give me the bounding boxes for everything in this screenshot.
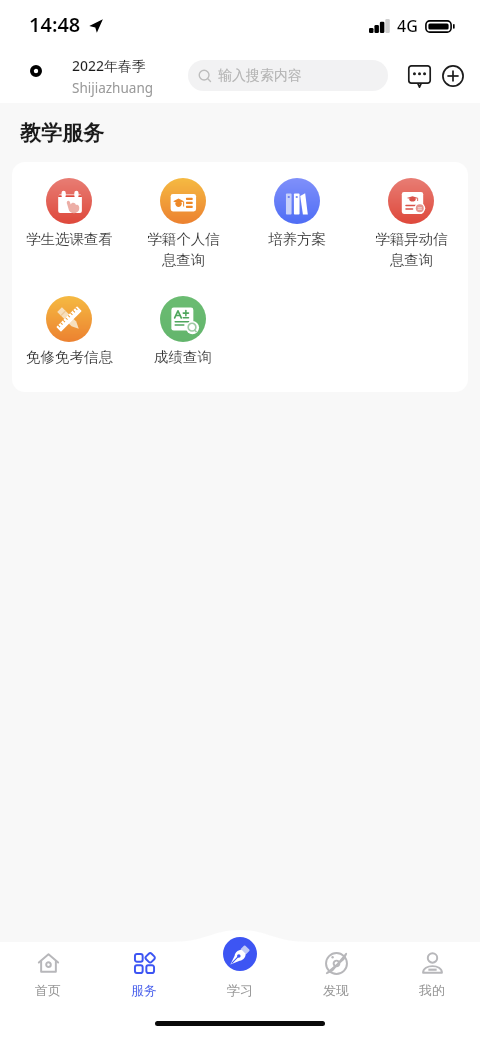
- button[interactable]: 培养方案: [240, 178, 354, 248]
- staticText: 成绩查询: [154, 348, 212, 366]
- button[interactable]: 输入搜索内容: [188, 60, 388, 91]
- staticText: 学籍异动信 息查询: [375, 230, 448, 269]
- button[interactable]: 服务: [96, 942, 192, 998]
- button[interactable]: Location: [22, 57, 50, 85]
- staticText: 免修免考信息: [26, 348, 113, 366]
- button[interactable]: 学习: [192, 942, 288, 998]
- button[interactable]: 首页: [0, 942, 96, 998]
- button[interactable]: Messages: [404, 61, 434, 91]
- staticText: 教学服务: [20, 120, 104, 146]
- staticText: Shijiazhuang: [72, 79, 154, 97]
- staticText: 学习: [227, 982, 253, 998]
- button[interactable]: 成绩查询: [126, 296, 240, 366]
- staticText: 培养方案: [268, 230, 326, 248]
- button[interactable]: Add: [438, 61, 468, 91]
- button[interactable]: Study: [223, 937, 257, 971]
- button[interactable]: 发现: [288, 942, 384, 998]
- staticText: 4G: [397, 15, 418, 37]
- button[interactable]: 免修免考信息: [12, 296, 126, 366]
- staticText: 发现: [323, 982, 349, 998]
- button[interactable]: 学生选课查看: [12, 178, 126, 248]
- staticText: 首页: [35, 982, 61, 998]
- staticText: 我的: [419, 982, 445, 998]
- button[interactable]: 学籍异动信 息查询: [354, 178, 468, 269]
- button[interactable]: 我的: [384, 942, 480, 998]
- staticText: 服务: [131, 982, 157, 998]
- staticText: 2022年春季: [72, 56, 147, 75]
- staticText: 输入搜索内容: [218, 67, 302, 85]
- staticText: 学生选课查看: [26, 230, 113, 248]
- staticText: 学籍个人信 息查询: [147, 230, 220, 269]
- button[interactable]: 学籍个人信 息查询: [126, 178, 240, 269]
- staticText: 14:48: [29, 11, 81, 38]
